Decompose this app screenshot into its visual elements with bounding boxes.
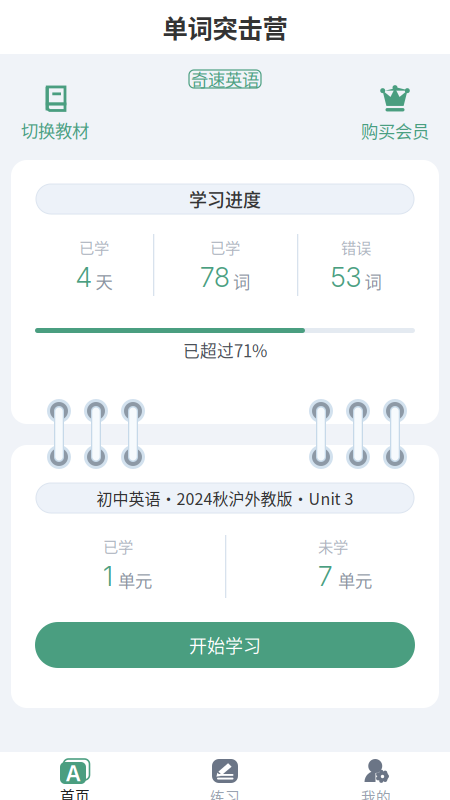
button[interactable]: 练习 xyxy=(170,759,280,799)
staticText: 初中英语·2024秋沪外教版·Unit 3 xyxy=(96,486,353,510)
button[interactable]: 切换教材 xyxy=(13,87,97,141)
staticText: 单元 xyxy=(118,567,152,592)
staticText: 4 xyxy=(75,261,92,293)
staticText: 词 xyxy=(364,268,381,293)
staticText: 奇速英语 xyxy=(191,66,259,92)
staticText: 学习进度 xyxy=(189,186,261,212)
staticText: 1 xyxy=(103,560,113,592)
staticText: 首页 xyxy=(60,785,90,800)
staticText: 未学 xyxy=(318,535,348,557)
staticText: 单元 xyxy=(338,567,372,592)
button[interactable]: 购买会员 xyxy=(353,87,437,141)
button[interactable]: A xyxy=(20,759,130,799)
staticText: 开始学习 xyxy=(189,632,261,658)
staticText: 已学 xyxy=(103,535,133,557)
staticText: 53 xyxy=(330,261,361,293)
button[interactable]: 开始学习 xyxy=(35,622,415,668)
staticText: 已超过71% xyxy=(183,338,267,362)
staticText: 已学 xyxy=(210,236,240,258)
staticText: 切换教材 xyxy=(21,117,89,143)
staticText: 78 xyxy=(200,261,230,293)
staticText: 错误 xyxy=(341,236,371,258)
staticText: 我的 xyxy=(361,786,391,800)
staticText: 单词突击营 xyxy=(162,9,287,45)
staticText: 天 xyxy=(95,268,112,293)
staticText: 7 xyxy=(318,560,333,592)
staticText: 购买会员 xyxy=(361,118,429,143)
staticText: 练习 xyxy=(210,786,240,800)
staticText: 已学 xyxy=(79,236,109,258)
staticText: A xyxy=(65,761,80,786)
button[interactable]: 我的 xyxy=(321,759,431,799)
staticText: 词 xyxy=(233,268,250,293)
